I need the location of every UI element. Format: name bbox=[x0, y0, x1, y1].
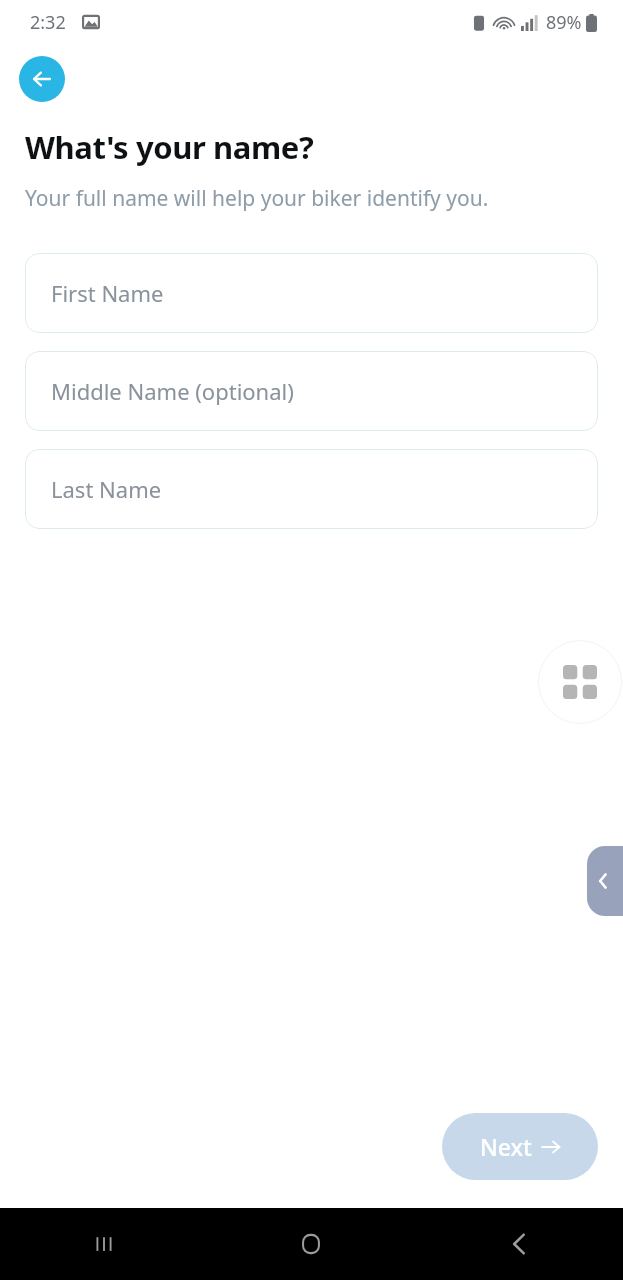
button[interactable]: Open panel bbox=[587, 846, 623, 916]
staticText: Last Name bbox=[51, 474, 162, 504]
staticText: 89% bbox=[546, 10, 582, 35]
staticText: Middle Name (optional) bbox=[51, 376, 294, 406]
staticText: 2:32 bbox=[30, 10, 66, 35]
button[interactable]: First Name bbox=[25, 253, 598, 333]
staticText: First Name bbox=[51, 278, 164, 308]
button[interactable]: Widgets bbox=[538, 640, 622, 724]
staticText: Next bbox=[480, 1131, 532, 1162]
button[interactable]: Middle Name (optional) bbox=[25, 351, 598, 431]
button[interactable]: Home bbox=[207, 1208, 415, 1280]
button[interactable]: Back bbox=[415, 1208, 623, 1280]
button[interactable]: Last Name bbox=[25, 449, 598, 529]
staticText: What's your name? bbox=[25, 126, 314, 168]
button[interactable]: Next bbox=[442, 1113, 598, 1180]
button[interactable]: Back bbox=[19, 56, 65, 102]
button[interactable]: Recent apps bbox=[0, 1208, 207, 1280]
staticText: Your full name will help your biker iden… bbox=[25, 184, 489, 213]
